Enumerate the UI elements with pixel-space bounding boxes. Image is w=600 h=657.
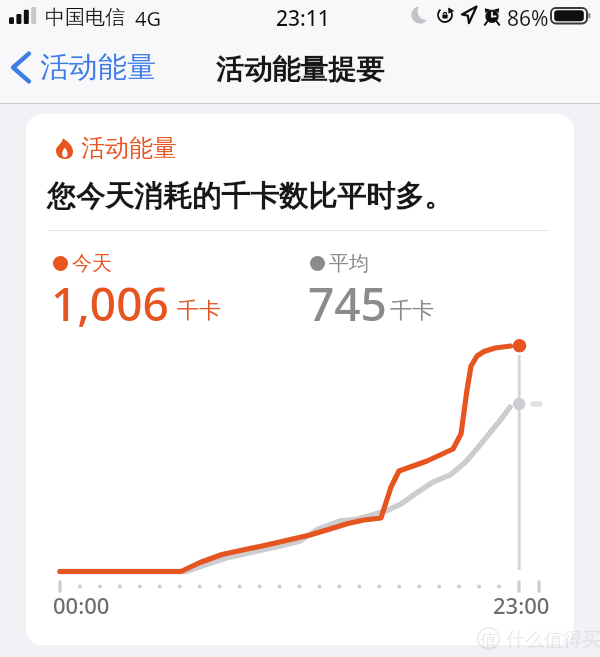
staticText: 活动能量 bbox=[40, 49, 156, 86]
staticText: 您今天消耗的千卡数比平时多。 bbox=[47, 178, 453, 215]
staticText: 什么值得买 bbox=[506, 628, 600, 652]
button[interactable]: 活动能量 bbox=[0, 43, 166, 92]
staticText: 4G bbox=[135, 5, 161, 32]
staticText: 23:00 bbox=[493, 590, 550, 620]
staticText: 今天 bbox=[72, 251, 112, 276]
staticText: 745 bbox=[308, 272, 387, 335]
staticText: 平均 bbox=[329, 251, 369, 276]
staticText: 中国电信 bbox=[45, 5, 125, 30]
staticText: 23:11 bbox=[276, 4, 330, 33]
staticText: 1,006 bbox=[51, 272, 169, 335]
staticText: 值 bbox=[480, 630, 497, 651]
staticText: 千卡 bbox=[390, 297, 434, 325]
staticText: 86% bbox=[507, 4, 549, 33]
staticText: 00:00 bbox=[53, 590, 110, 620]
staticText: 千卡 bbox=[177, 297, 221, 325]
staticText: 活动能量 bbox=[81, 133, 177, 163]
staticText: 活动能量提要 bbox=[216, 52, 384, 87]
